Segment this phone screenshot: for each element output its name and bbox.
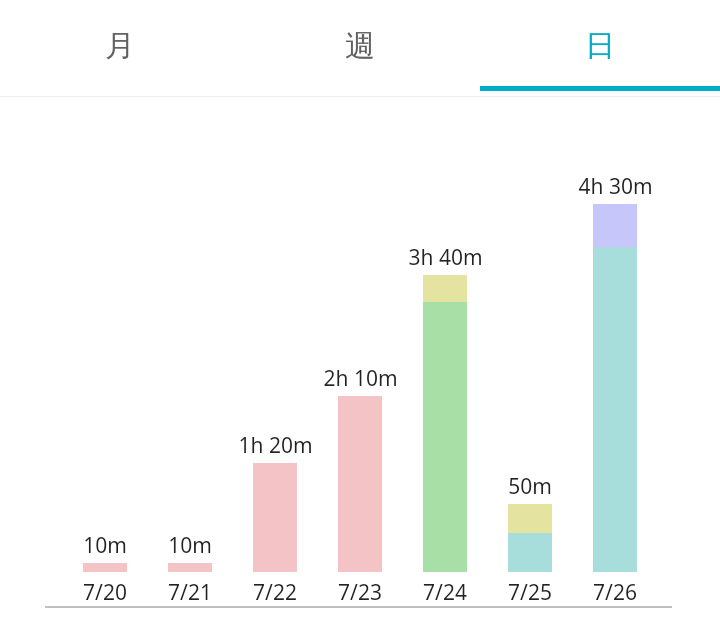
staticText: 7/26 bbox=[593, 578, 637, 606]
button[interactable]: 週 bbox=[240, 0, 480, 91]
staticText: 3h 40m bbox=[408, 243, 483, 271]
staticText: 10m bbox=[83, 531, 127, 559]
staticText: 日 bbox=[585, 27, 615, 65]
staticText: 10m bbox=[168, 531, 212, 559]
button[interactable]: 月 bbox=[0, 0, 240, 91]
button[interactable]: 日 bbox=[480, 0, 720, 91]
staticText: 7/23 bbox=[338, 578, 382, 606]
staticText: 50m bbox=[508, 472, 552, 500]
staticText: 7/25 bbox=[508, 578, 552, 606]
staticText: 月 bbox=[105, 27, 135, 65]
staticText: 1h 20m bbox=[238, 431, 313, 459]
staticText: 週 bbox=[345, 27, 375, 65]
staticText: 7/20 bbox=[83, 578, 127, 606]
staticText: 7/22 bbox=[253, 578, 297, 606]
staticText: 2h 10m bbox=[323, 364, 398, 392]
staticText: 7/24 bbox=[423, 578, 467, 606]
other: Daily usage chart bbox=[0, 0, 720, 618]
staticText: 7/21 bbox=[168, 578, 212, 606]
staticText: 4h 30m bbox=[578, 172, 653, 200]
